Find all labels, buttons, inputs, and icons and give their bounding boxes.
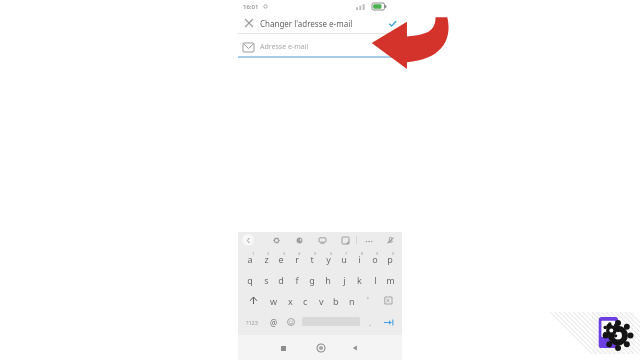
button[interactable]: Emoji xyxy=(283,311,299,333)
staticText: Adresse e-mail xyxy=(260,42,309,52)
staticText: v xyxy=(319,295,324,307)
staticText: p xyxy=(387,253,393,265)
staticText: m xyxy=(386,274,395,286)
staticText: ?123 xyxy=(246,319,258,326)
button[interactable]: Next field xyxy=(380,311,398,333)
button[interactable]: Microphone off xyxy=(384,234,397,247)
staticText: b xyxy=(333,295,339,307)
staticText: @ xyxy=(270,317,278,328)
button[interactable]: ?123 xyxy=(241,311,263,333)
staticText: 8 xyxy=(361,251,364,256)
button[interactable]: Clipboard xyxy=(339,234,351,246)
staticText: z xyxy=(264,253,269,265)
staticText: 16:01 xyxy=(243,3,259,11)
staticText: 3 xyxy=(283,251,286,256)
staticText: 2 xyxy=(267,251,270,256)
staticText: ' xyxy=(367,295,369,306)
staticText: w xyxy=(270,295,278,307)
button[interactable]: r xyxy=(289,248,305,269)
button[interactable]: y xyxy=(320,248,336,269)
staticText: Changer l'adresse e-mail xyxy=(260,18,353,29)
staticText: 4 xyxy=(298,251,301,256)
staticText: y xyxy=(326,253,331,265)
staticText: k xyxy=(357,274,362,286)
staticText: d xyxy=(278,274,284,286)
button[interactable]: . xyxy=(364,311,376,333)
button[interactable]: h xyxy=(320,269,336,290)
button[interactable]: Backspace xyxy=(378,290,396,311)
staticText: c xyxy=(303,295,308,307)
button[interactable]: ' xyxy=(362,290,374,311)
button[interactable]: More xyxy=(362,234,376,248)
button[interactable]: z xyxy=(258,248,274,269)
button[interactable]: l xyxy=(367,269,383,290)
button[interactable]: p xyxy=(382,248,398,269)
staticText: . xyxy=(369,317,372,328)
staticText: j xyxy=(343,274,346,286)
button[interactable]: n xyxy=(344,290,360,311)
staticText: h xyxy=(325,274,331,286)
button[interactable]: Stickers xyxy=(316,234,328,246)
button[interactable]: v xyxy=(313,290,329,311)
button[interactable]: Themes xyxy=(293,234,305,246)
button[interactable]: w xyxy=(266,290,282,311)
button[interactable]: Recents xyxy=(276,341,290,355)
button[interactable]: j xyxy=(336,269,352,290)
button[interactable]: Adresse e-mail xyxy=(238,38,402,56)
button[interactable]: Home xyxy=(313,340,329,356)
button[interactable]: e xyxy=(273,248,289,269)
staticText: t xyxy=(310,253,314,265)
button[interactable]: o xyxy=(367,248,383,269)
button[interactable]: s xyxy=(258,269,274,290)
staticText: u xyxy=(341,253,347,265)
staticText: a xyxy=(247,253,253,265)
staticText: n xyxy=(349,295,355,307)
staticText: 1 xyxy=(252,251,255,256)
staticText: 9 xyxy=(376,251,379,256)
staticText: g xyxy=(309,274,315,286)
button[interactable]: @ xyxy=(266,311,282,333)
button[interactable]: Close xyxy=(238,13,260,33)
button[interactable]: g xyxy=(304,269,320,290)
staticText: i xyxy=(358,253,361,265)
button[interactable]: u xyxy=(336,248,352,269)
button[interactable]: f xyxy=(289,269,305,290)
staticText: 0 xyxy=(392,251,395,256)
staticText: q xyxy=(247,274,253,286)
staticText: r xyxy=(295,253,299,265)
button[interactable]: m xyxy=(382,269,398,290)
staticText: f xyxy=(295,274,299,286)
button[interactable]: d xyxy=(273,269,289,290)
button[interactable]: x xyxy=(282,290,298,311)
button[interactable]: Confirm xyxy=(382,13,402,33)
button[interactable]: q xyxy=(242,269,258,290)
button[interactable]: Back xyxy=(348,341,362,355)
staticText: l xyxy=(374,274,377,286)
button[interactable]: i xyxy=(351,248,367,269)
staticText: 7 xyxy=(345,251,348,256)
button[interactable]: c xyxy=(297,290,313,311)
button[interactable]: Settings xyxy=(270,234,282,246)
staticText: e xyxy=(278,253,284,265)
button[interactable]: Back xyxy=(242,234,254,246)
button[interactable]: Shift xyxy=(244,290,262,311)
staticText: 6 xyxy=(330,251,333,256)
staticText: o xyxy=(372,253,378,265)
button[interactable]: t xyxy=(304,248,320,269)
button[interactable]: b xyxy=(328,290,344,311)
button[interactable]: a xyxy=(242,248,258,269)
staticText: 5 xyxy=(314,251,317,256)
staticText: s xyxy=(264,274,269,286)
button[interactable]: k xyxy=(351,269,367,290)
staticText: x xyxy=(288,295,293,307)
